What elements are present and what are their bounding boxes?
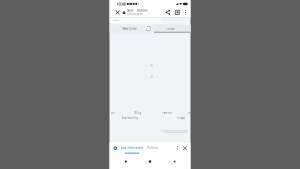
button[interactable]: Browser app <box>112 143 119 153</box>
button[interactable]: Open in browser <box>173 8 182 17</box>
button[interactable]: Share <box>163 8 173 17</box>
button[interactable]: Home <box>142 156 158 166</box>
staticText: Marketplace <box>122 27 137 30</box>
button[interactable]: Blog <box>134 111 141 115</box>
staticText: Create <box>166 27 175 30</box>
staticText: app.roblox.com <box>120 146 143 149</box>
staticText: Privacy <box>176 116 184 120</box>
staticText: Blog <box>134 111 141 115</box>
button[interactable]: Close tab <box>181 143 189 153</box>
button[interactable]: Marketplace <box>109 25 150 33</box>
button[interactable]: Back <box>166 156 182 166</box>
button[interactable]: Parents <box>161 111 171 115</box>
staticText: Parents <box>161 111 171 115</box>
button[interactable]: Recent apps <box>118 156 134 166</box>
staticText: us <box>111 111 114 115</box>
staticText: Store - Roblox <box>127 9 147 12</box>
button[interactable]: us <box>111 111 114 115</box>
button[interactable]: Accessibility <box>121 116 137 120</box>
button[interactable]: Tab options <box>174 143 181 153</box>
staticText: roblox.com <box>127 12 142 16</box>
button[interactable]: app.roblox.com <box>119 143 145 153</box>
staticText: Roblox <box>147 146 157 149</box>
button[interactable]: Roblox <box>145 143 160 153</box>
button[interactable]: More options <box>182 8 189 17</box>
button[interactable]: Privacy <box>176 116 184 120</box>
staticText: He <box>187 111 191 115</box>
staticText: 10:48 <box>116 1 125 6</box>
button[interactable]: Create <box>150 25 190 33</box>
button[interactable]: Close <box>113 8 123 17</box>
button[interactable]: He <box>187 111 191 115</box>
staticText: Accessibility <box>121 116 137 120</box>
